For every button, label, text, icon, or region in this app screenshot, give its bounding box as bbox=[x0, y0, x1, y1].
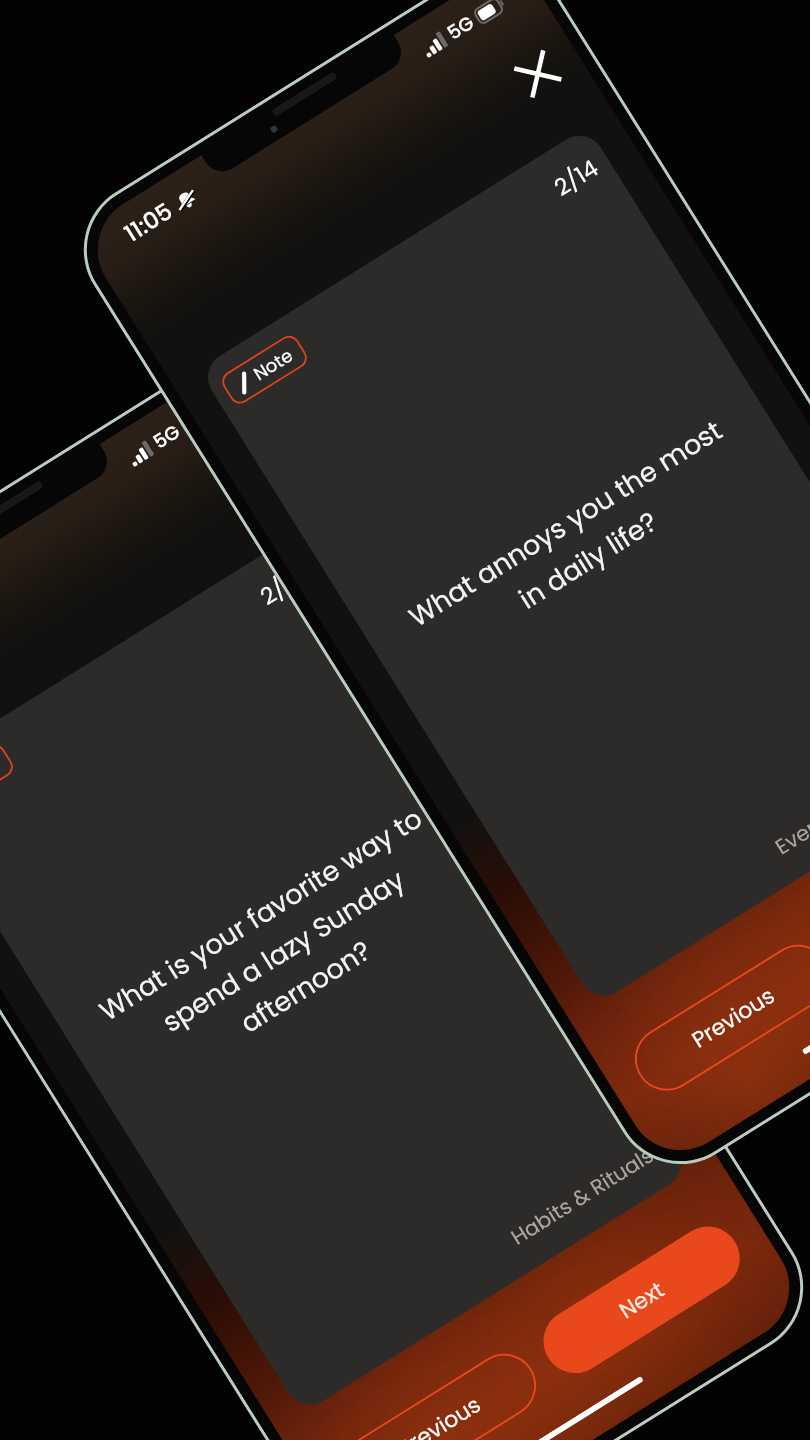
staticText: 2/14 bbox=[254, 561, 310, 613]
staticText: 2/14 bbox=[548, 152, 604, 204]
staticText: Previous bbox=[392, 1389, 486, 1440]
staticText: Next bbox=[613, 1274, 670, 1326]
staticText: Previous bbox=[686, 980, 780, 1055]
staticText: Note bbox=[249, 343, 297, 386]
button[interactable]: Close bbox=[505, 42, 569, 105]
staticText: 5G bbox=[148, 418, 185, 455]
staticText: Habits & Rituals bbox=[505, 1141, 659, 1252]
staticText: What annoys you the most in daily life? bbox=[402, 412, 752, 672]
button[interactable]: Previous bbox=[329, 1341, 548, 1440]
staticText: Note bbox=[0, 752, 3, 795]
button[interactable]: Previous bbox=[623, 932, 810, 1103]
button[interactable]: Next bbox=[531, 1214, 752, 1385]
staticText: What is your favorite way to spend a laz… bbox=[92, 800, 474, 1102]
staticText: 5G bbox=[442, 9, 479, 46]
staticText: 11:05 bbox=[118, 195, 179, 249]
staticText: Everyday Emotions bbox=[770, 732, 810, 861]
button[interactable]: Close bbox=[211, 451, 275, 514]
button[interactable]: Note bbox=[0, 741, 17, 817]
button[interactable]: Note bbox=[218, 332, 311, 408]
